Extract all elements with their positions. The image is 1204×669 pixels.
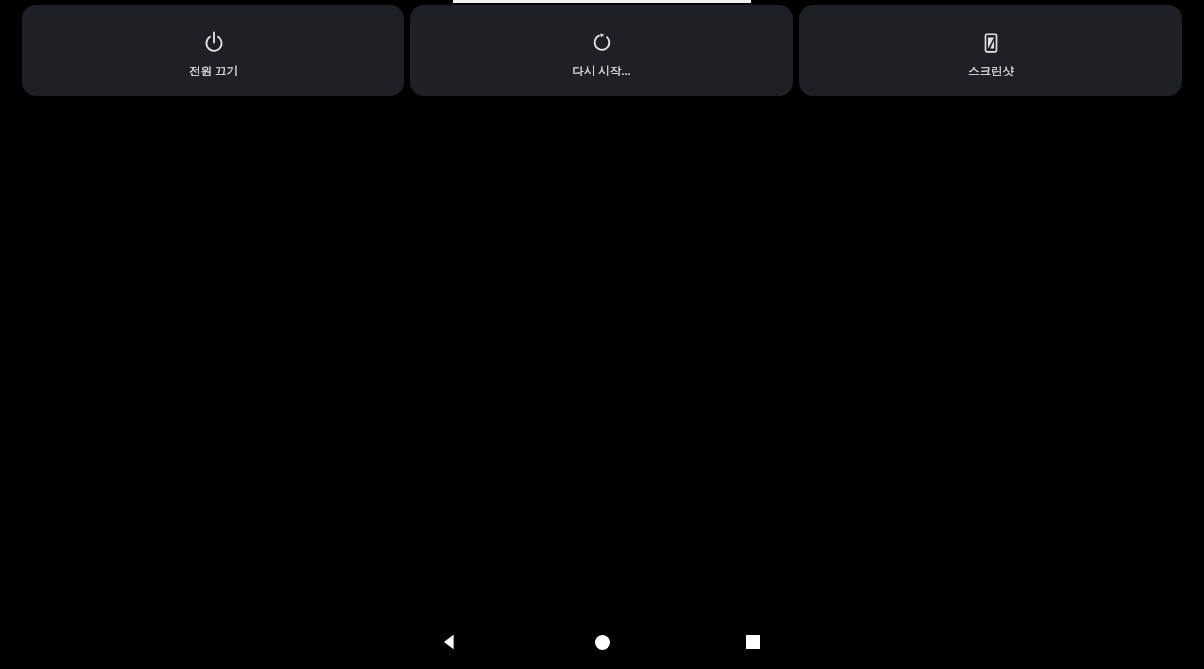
button[interactable]: 스크린샷 (799, 5, 1182, 96)
button[interactable]: 다시 시작 (410, 5, 793, 96)
staticText: 다시 시작... (572, 63, 631, 79)
staticText: 전원 끄기 (189, 63, 238, 79)
button[interactable]: Home (578, 621, 626, 663)
staticText: 스크린샷 (968, 64, 1014, 78)
button[interactable]: Back (426, 621, 474, 663)
button[interactable]: Recent apps (729, 621, 777, 663)
button[interactable]: 전원 끄기 (22, 5, 404, 96)
